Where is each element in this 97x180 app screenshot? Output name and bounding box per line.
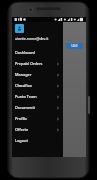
button[interactable]: Manager <box>12 69 63 80</box>
staticText: Profilo <box>15 116 56 121</box>
staticText: SAVE <box>71 44 79 48</box>
button[interactable]: Account <box>12 22 63 44</box>
staticText: Classifica <box>15 83 56 88</box>
staticText: Punto Team <box>15 94 56 99</box>
button[interactable]: Documenti <box>12 102 63 113</box>
staticText: Documenti <box>15 105 56 110</box>
button[interactable]: Classifica <box>12 80 63 91</box>
staticText: Prepaid Orders <box>15 61 56 66</box>
button[interactable]: Profilo <box>12 113 63 124</box>
staticText: Dashboard <box>15 50 60 55</box>
staticText: Offerte <box>15 127 56 132</box>
button[interactable]: Dashboard <box>12 47 63 58</box>
staticText: utente.nome@dev.it <box>15 36 49 41</box>
button[interactable]: Logout <box>12 135 63 146</box>
button[interactable]: Punto Team <box>12 91 63 102</box>
button[interactable]: Offerte <box>12 124 63 135</box>
staticText: Manager <box>15 72 56 77</box>
button[interactable]: SAVE <box>66 43 83 49</box>
other: Account <box>15 24 24 33</box>
staticText: Logout <box>15 138 60 143</box>
button[interactable]: Prepaid Orders <box>12 58 63 69</box>
